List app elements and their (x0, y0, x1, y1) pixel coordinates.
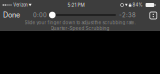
staticText: 84% (133, 2, 143, 8)
staticText: Quarter-Speed Scrubbing (50, 25, 109, 31)
button[interactable]: AirPlay (150, 11, 157, 18)
staticText: Slide your finger down to adjust the scr… (24, 20, 135, 25)
staticText: -2:38 (119, 11, 136, 19)
button[interactable]: Done (3, 10, 33, 20)
staticText: 5:21 PM (68, 2, 85, 8)
staticText: Verizon (13, 2, 27, 7)
staticText: Done (3, 11, 20, 19)
staticText: 0:00 (33, 11, 47, 19)
